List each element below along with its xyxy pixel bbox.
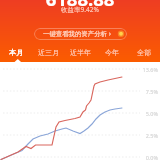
staticText: 2.5% (145, 132, 158, 139)
button[interactable]: 本月 (0, 46, 32, 58)
staticText: 今年 (105, 48, 119, 57)
staticText: 一键查看我的资产分析 (43, 30, 107, 38)
staticText: 近三月 (38, 48, 59, 57)
staticText: 7.5% (145, 88, 158, 95)
staticText: 本月 (9, 48, 23, 57)
staticText: 收益率9.42% (0, 5, 160, 14)
staticText: 5.0% (145, 110, 158, 117)
staticText: 全部 (137, 48, 151, 57)
button[interactable]: 一键查看我的资产分析 (34, 28, 127, 40)
button[interactable]: 近半年 (64, 46, 96, 58)
staticText: 0.0% (145, 154, 158, 160)
button[interactable]: 今年 (96, 46, 128, 58)
button[interactable]: 近三月 (32, 46, 64, 58)
button[interactable]: 全部 (128, 46, 160, 58)
staticText: › (107, 29, 111, 39)
staticText: 13.6% (142, 66, 158, 73)
staticText: 近半年 (70, 48, 91, 57)
staticText: 6188.88 (0, 0, 160, 11)
